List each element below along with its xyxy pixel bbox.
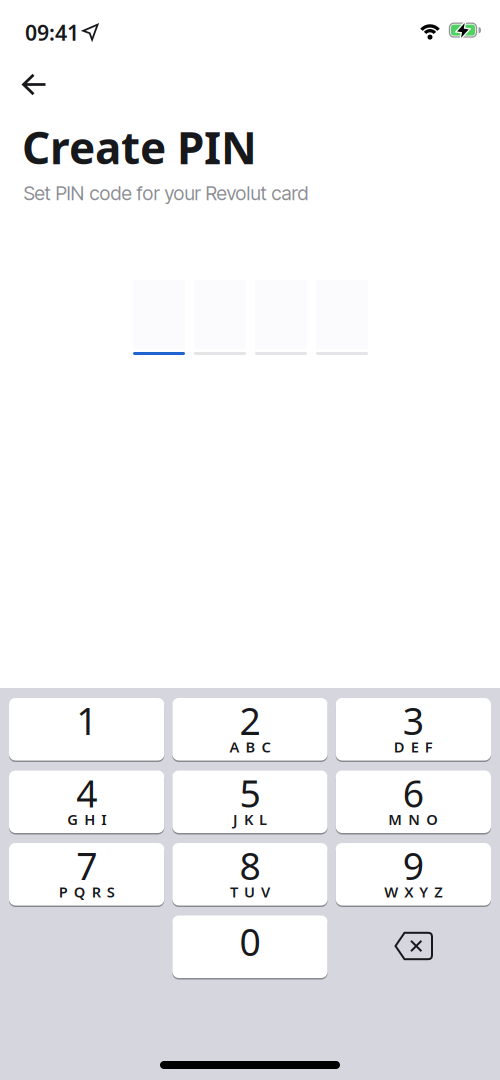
button[interactable]: Delete	[336, 915, 491, 978]
staticText: V	[261, 882, 270, 901]
staticText: 0	[239, 917, 260, 966]
staticText: Set PIN code for your Revolut card	[23, 181, 308, 205]
staticText: 6	[403, 768, 424, 818]
staticText: C	[261, 737, 270, 756]
staticText: 2	[239, 696, 260, 745]
staticText: M	[388, 809, 402, 829]
staticText: E	[411, 737, 419, 756]
staticText: X	[404, 882, 413, 901]
staticText: O	[426, 809, 438, 829]
staticText: Y	[419, 882, 428, 901]
staticText: F	[425, 737, 433, 756]
staticText: H	[84, 809, 95, 829]
button[interactable]: 0	[172, 915, 328, 979]
staticText: 9	[403, 841, 424, 890]
staticText: W	[384, 882, 398, 901]
button[interactable]: 2	[172, 698, 328, 762]
staticText: I	[101, 809, 106, 829]
staticText: 1	[76, 696, 97, 745]
staticText: 5	[239, 768, 260, 818]
staticText: 8	[239, 841, 260, 890]
staticText: Create PIN	[22, 118, 257, 176]
staticText: U	[244, 882, 255, 901]
staticText: P	[59, 882, 68, 901]
button[interactable]: 7	[9, 843, 164, 907]
button[interactable]: 9	[336, 843, 491, 907]
button[interactable]: Back	[0, 60, 60, 110]
staticText: G	[67, 809, 78, 829]
staticText: J	[233, 809, 238, 829]
staticText: L	[259, 809, 267, 829]
staticText: 4	[76, 768, 97, 818]
staticText: K	[244, 809, 253, 829]
staticText: T	[230, 882, 238, 901]
staticText: D	[394, 737, 405, 756]
staticText: S	[107, 882, 115, 901]
button[interactable]: 3	[336, 698, 491, 762]
staticText: B	[245, 737, 255, 756]
staticText: 7	[76, 841, 97, 890]
staticText: R	[92, 882, 101, 901]
staticText: 3	[403, 696, 424, 745]
button[interactable]: 5	[172, 770, 328, 834]
button[interactable]: 6	[336, 770, 491, 834]
button[interactable]: 4	[9, 770, 164, 834]
button[interactable]: 1	[9, 698, 164, 762]
staticText: 09:41	[25, 18, 79, 47]
staticText: A	[229, 737, 239, 756]
staticText: Z	[434, 882, 442, 901]
staticText: Q	[74, 882, 86, 901]
staticText: N	[408, 809, 420, 829]
button[interactable]: 8	[172, 843, 328, 907]
